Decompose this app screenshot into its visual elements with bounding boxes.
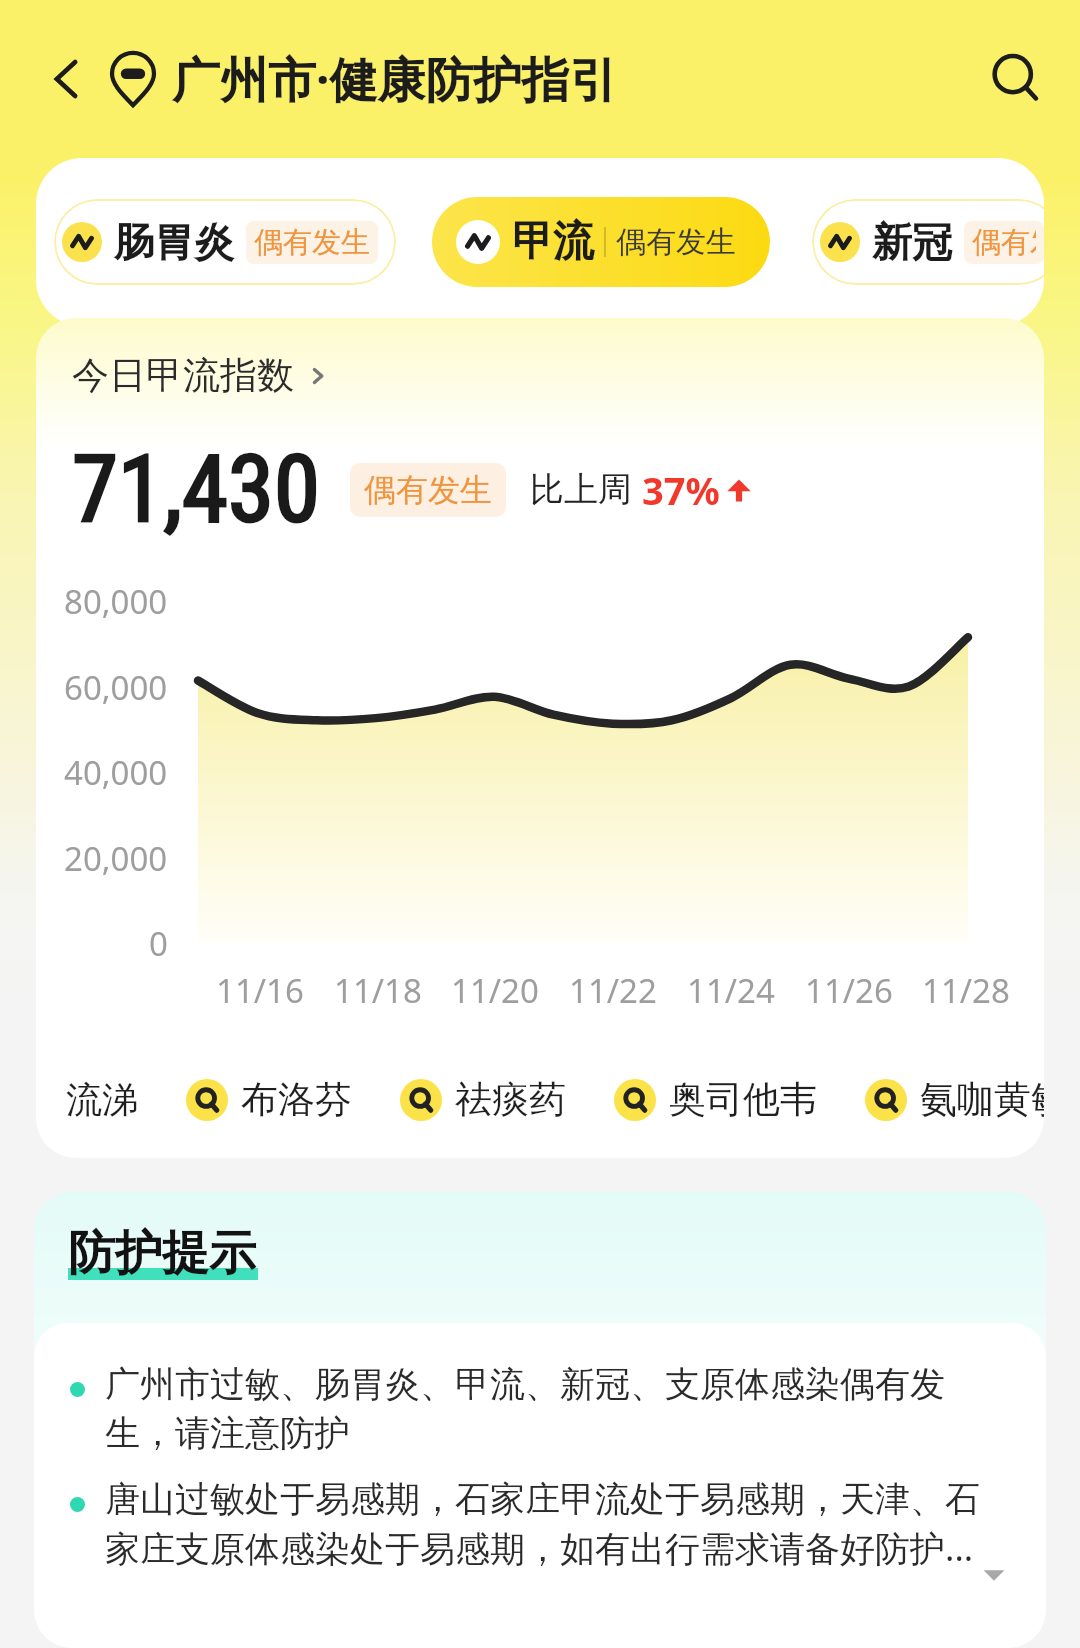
staticText: 防护提示 (68, 1224, 256, 1283)
staticText: 比上周 (530, 468, 632, 511)
button[interactable]: 新冠 (812, 199, 1044, 285)
button[interactable]: 甲流 (432, 197, 770, 287)
staticText: 11/16 (216, 968, 304, 1012)
staticText: 80,000 (64, 579, 168, 624)
staticText: 20,000 (64, 836, 168, 881)
staticText: 广州市过敏、肠胃炎、甲流、新冠、支原体感染偶有发生，请注意防护 (105, 1362, 1006, 1455)
staticText: 奥司他韦 (669, 1076, 817, 1123)
staticText: 11/28 (922, 968, 1010, 1012)
staticText: 祛痰药 (455, 1076, 566, 1123)
button[interactable]: Back (30, 43, 102, 115)
button[interactable]: 奥司他韦 (614, 1076, 817, 1123)
staticText: 偶有发生 (616, 223, 736, 261)
staticText: 甲流 (512, 216, 594, 268)
staticText: 新冠 (872, 217, 952, 267)
button[interactable]: 今日甲流指数 (72, 352, 330, 399)
staticText: 40,000 (64, 750, 168, 795)
staticText: 氨咖黄敏 (920, 1076, 1044, 1123)
staticText: 唐山过敏处于易感期，石家庄甲流处于易感期，天津、石家庄支原体感染处于易感期，如有… (105, 1477, 1006, 1572)
button[interactable]: 肠胃炎 (54, 199, 396, 285)
staticText: 今日甲流指数 (72, 352, 294, 399)
staticText: 偶有发生 (254, 224, 370, 261)
staticText: 流涕 (66, 1077, 138, 1122)
staticText: 肠胃炎 (114, 217, 234, 267)
staticText: 37% (642, 464, 720, 516)
button[interactable]: 氨咖黄敏 (865, 1076, 1044, 1123)
staticText: 60,000 (64, 665, 168, 710)
staticText: 11/22 (569, 968, 657, 1012)
staticText: 偶有发生 (364, 470, 492, 510)
staticText: 0 (149, 921, 168, 966)
staticText: 11/20 (451, 968, 539, 1012)
button[interactable]: 祛痰药 (400, 1076, 566, 1123)
staticText: 71,430 (72, 435, 320, 544)
staticText: 11/18 (334, 968, 422, 1012)
staticText: 广州市·健康防护指引 (172, 46, 618, 112)
button[interactable]: 布洛芬 (186, 1076, 352, 1123)
button[interactable]: Search (976, 39, 1056, 119)
staticText: 偶有发生 (972, 224, 1036, 261)
staticText: 11/26 (805, 968, 893, 1012)
staticText: 布洛芬 (241, 1076, 352, 1123)
staticText: 11/24 (687, 968, 775, 1012)
